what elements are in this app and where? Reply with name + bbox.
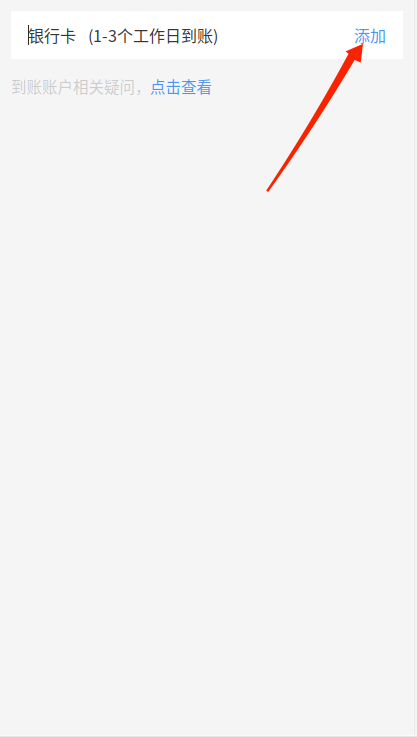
button[interactable]: 银行卡 (1-3个工作日到账)	[11, 11, 331, 59]
button[interactable]: 添加	[331, 11, 403, 59]
staticText: 银行卡 (1-3个工作日到账)	[28, 23, 218, 47]
staticText: 点击查看	[150, 75, 211, 97]
button[interactable]: 点击查看	[150, 75, 211, 97]
staticText: 添加	[354, 23, 386, 47]
staticText: 到账账户相关疑问，	[11, 75, 150, 97]
